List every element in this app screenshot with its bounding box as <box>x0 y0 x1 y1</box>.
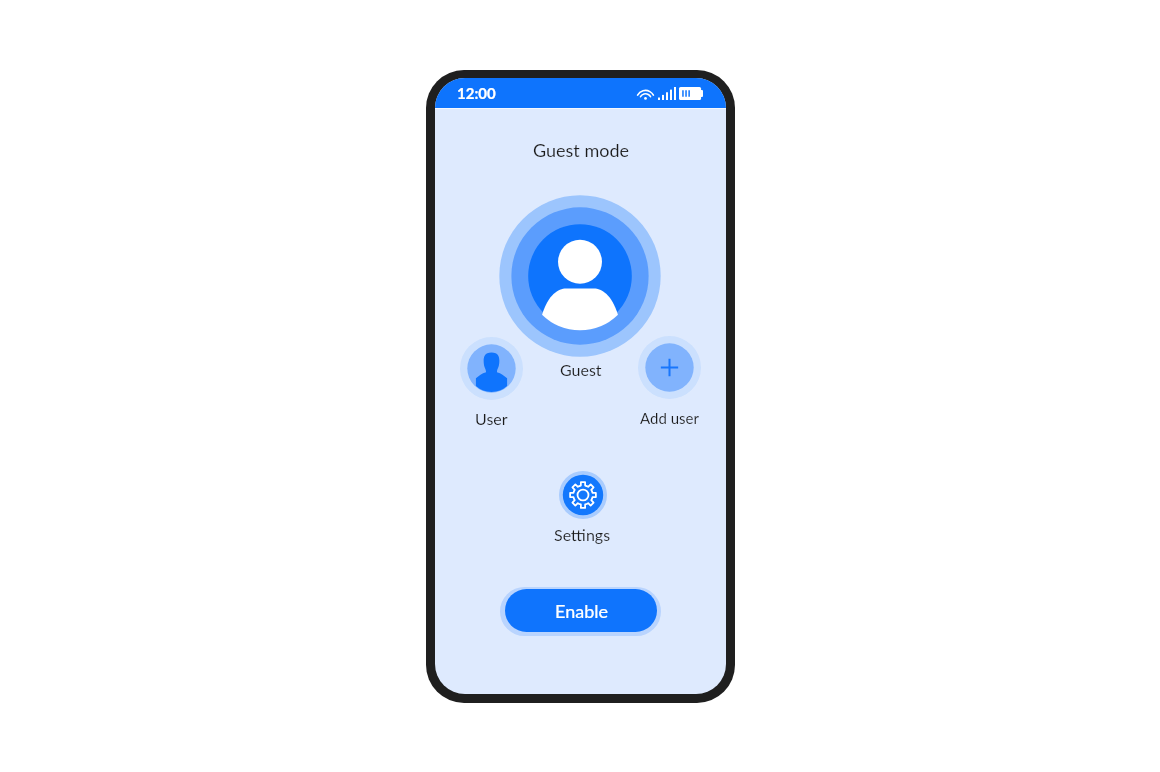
button[interactable]: Add user <box>638 336 701 427</box>
staticText: 12:00 <box>457 84 496 102</box>
button[interactable]: Guest avatar <box>498 194 662 358</box>
staticText: Guest <box>560 360 602 379</box>
button[interactable]: Enable <box>505 589 657 632</box>
button[interactable]: Settings <box>554 471 611 544</box>
staticText: User <box>475 409 508 428</box>
other: Add user <box>638 336 701 399</box>
other: Settings <box>559 471 607 519</box>
staticText: Enable <box>555 600 608 622</box>
button[interactable]: User <box>460 337 523 428</box>
staticText: Add user <box>640 409 699 427</box>
staticText: Guest mode <box>533 139 629 161</box>
staticText: Settings <box>554 525 611 544</box>
